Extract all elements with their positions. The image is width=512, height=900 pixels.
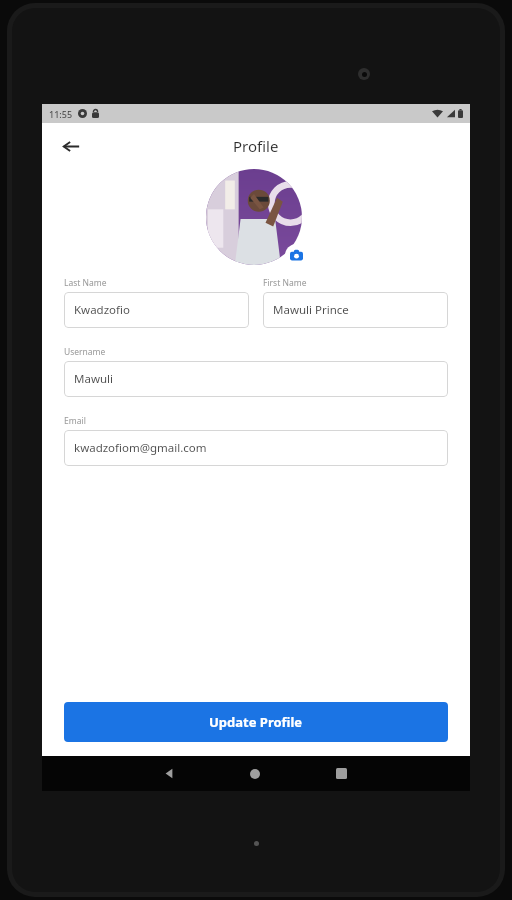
button[interactable]: Back xyxy=(127,756,212,791)
staticText: kwadzofiom@gmail.com xyxy=(74,440,207,456)
staticText: Profile xyxy=(233,136,279,156)
staticText: Update Profile xyxy=(209,713,303,731)
staticText: 11:55 xyxy=(49,108,73,120)
staticText: Email xyxy=(64,415,86,427)
staticText: Last Name xyxy=(64,277,107,289)
button[interactable]: Mawuli Prince xyxy=(263,292,448,328)
staticText: Kwadzofio xyxy=(74,302,130,318)
button[interactable]: Recents xyxy=(298,756,384,791)
staticText: Mawuli Prince xyxy=(273,302,349,318)
button[interactable]: Change photo xyxy=(285,244,308,267)
button[interactable]: Update Profile xyxy=(64,702,448,742)
staticText: First Name xyxy=(263,277,307,289)
button[interactable]: Back xyxy=(54,129,88,163)
button[interactable]: Mawuli xyxy=(64,361,448,397)
button[interactable]: kwadzofiom@gmail.com xyxy=(64,430,448,466)
button[interactable]: Home xyxy=(212,756,298,791)
staticText: Username xyxy=(64,346,106,358)
staticText: Mawuli xyxy=(74,371,113,387)
button[interactable]: Kwadzofio xyxy=(64,292,249,328)
